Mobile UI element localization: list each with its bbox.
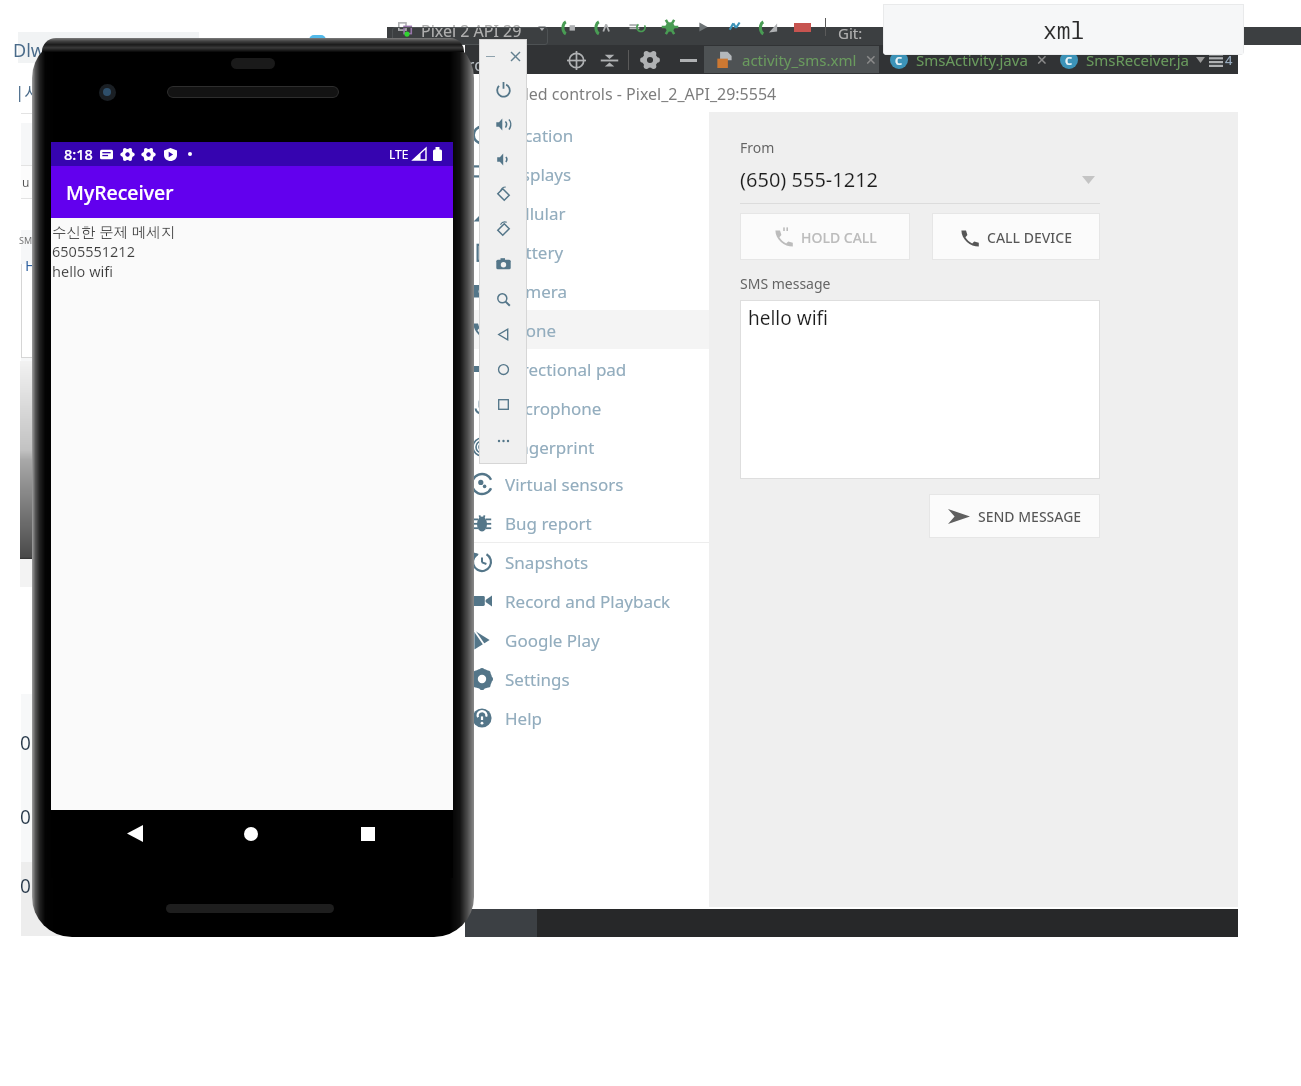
staticText: C [1065, 53, 1073, 68]
button[interactable]: Google Play [465, 620, 709, 659]
button[interactable]: emulator control 2 [479, 142, 527, 177]
button[interactable]: Run / debug toolbar [562, 18, 863, 36]
staticText: 6505551212 [52, 241, 135, 261]
staticText: Microphone [505, 397, 602, 420]
staticText: 0 [20, 804, 31, 830]
staticText: SmsReceiver.ja [1086, 50, 1189, 70]
button[interactable]: Displays [465, 154, 709, 193]
button[interactable]: Fingerprint [465, 427, 709, 466]
button[interactable]: emulator control 0 [479, 72, 527, 107]
staticText: Camera [505, 280, 567, 303]
staticText: CALL DEVICE [987, 228, 1072, 247]
button[interactable]: Collapse [596, 47, 622, 73]
button[interactable]: Location [465, 115, 709, 154]
staticText: ✕ [865, 52, 877, 68]
button[interactable]: Phone [465, 310, 709, 349]
staticText: Phone [505, 319, 557, 342]
button[interactable]: Minimize toolbar [479, 39, 501, 73]
button[interactable]: Settings [465, 659, 709, 698]
staticText: ded controls - Pixel_2_API_29:5554 [519, 83, 777, 105]
staticText: 8:18 [64, 144, 93, 164]
staticText: SM [19, 234, 33, 246]
staticText: dro [458, 54, 484, 76]
button[interactable]: Microphone [465, 388, 709, 427]
button[interactable]: C [890, 46, 1189, 73]
button[interactable]: Select device: Pixel 2 API 29 [398, 27, 558, 45]
staticText: u [22, 174, 30, 190]
staticText: Pixel 2 API 29 [421, 20, 522, 38]
staticText: MyReceiver [66, 179, 174, 206]
staticText: Directional pad [505, 358, 627, 381]
staticText: Dlw8 [13, 38, 56, 63]
button[interactable]: emulator control 9 [479, 387, 527, 422]
button[interactable]: (650) 555-1212 [740, 166, 1100, 193]
button[interactable]: Cellular [465, 193, 709, 232]
button[interactable]: Back [100, 810, 170, 857]
staticText: HOLD CALL [801, 228, 877, 247]
button[interactable]: Minimize [675, 47, 701, 73]
staticText: 0 [20, 730, 31, 756]
staticText: SEND MESSAGE [978, 507, 1082, 526]
staticText: Cellular [505, 202, 566, 225]
button[interactable]: Camera [465, 271, 709, 310]
button[interactable]: Snapshots [465, 542, 709, 581]
button[interactable]: emulator control 3 [479, 177, 527, 212]
button[interactable]: Help [465, 698, 709, 737]
button[interactable]: emulator control 6 [479, 282, 527, 317]
button[interactable]: emulator control 10 [479, 422, 527, 457]
button[interactable]: emulator control 4 [479, 212, 527, 247]
button[interactable]: Battery [465, 232, 709, 271]
staticText: Git: [838, 23, 863, 41]
button[interactable]: emulator control 1 [479, 107, 527, 142]
staticText: Displays [505, 163, 572, 186]
button[interactable]: SEND MESSAGE [929, 494, 1100, 538]
staticText: |시 [15, 80, 42, 103]
staticText: Google Play [505, 629, 600, 652]
button[interactable]: Directional pad [465, 349, 709, 388]
button[interactable]: Record and Playback [465, 581, 709, 620]
staticText: Location [505, 124, 574, 147]
staticText: xml [1043, 14, 1085, 45]
staticText: hello wifi [52, 261, 114, 281]
staticText: (650) 555-1212 [740, 166, 879, 193]
staticText: Settings [505, 668, 570, 691]
button[interactable]: emulator control 8 [479, 352, 527, 387]
staticText: LTE [389, 146, 409, 162]
button[interactable]: emulator control 7 [479, 317, 527, 352]
staticText: Record and Playback [505, 590, 671, 613]
staticText: 수신한 문제 메세지 [52, 221, 176, 241]
staticText: H [25, 255, 37, 275]
button[interactable]: Bug report [465, 503, 709, 542]
button[interactable]: Home [216, 810, 286, 857]
staticText: Virtual sensors [505, 473, 624, 496]
button[interactable]: Settings [637, 47, 663, 73]
button[interactable]: HOLD CALL [740, 213, 910, 260]
button[interactable] [704, 46, 879, 73]
staticText: From [740, 138, 775, 157]
staticText: Fingerprint [505, 436, 595, 459]
staticText: 4 [1225, 51, 1233, 69]
staticText: Battery [505, 241, 564, 264]
button[interactable]: Layout Inspector [563, 47, 589, 73]
staticText: Bug report [505, 512, 592, 535]
staticText: hello wifi [748, 305, 828, 331]
staticText: Snapshots [505, 551, 589, 574]
button[interactable]: CALL DEVICE [932, 213, 1100, 260]
staticText: ✕ [1036, 52, 1048, 68]
button[interactable]: activity_sms.xml [717, 46, 877, 73]
button[interactable]: emulator control 5 [479, 247, 527, 282]
staticText: Help [505, 707, 543, 730]
button[interactable]: Recents [333, 810, 403, 857]
staticText: SmsActivity.java [916, 50, 1028, 70]
staticText: 0 [20, 873, 31, 899]
staticText: C [895, 53, 903, 68]
staticText: activity_sms.xml [742, 50, 857, 70]
button[interactable]: Virtual sensors [465, 464, 709, 503]
staticText: SMS message [740, 274, 831, 293]
button[interactable]: Close toolbar [503, 39, 527, 73]
